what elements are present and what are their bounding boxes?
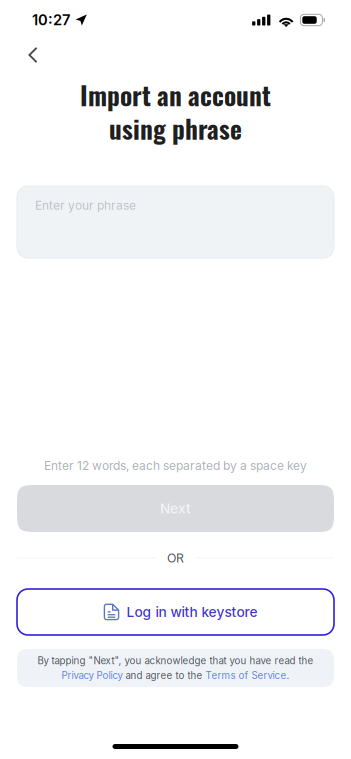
staticText: Terms of Service <box>205 669 286 681</box>
button[interactable]: Log in with keystore <box>17 589 334 635</box>
button[interactable]: Enter your phrase <box>17 186 334 258</box>
staticText: By tapping "Next", you acknowledge that … <box>37 655 313 666</box>
staticText: Import an account <box>80 76 271 113</box>
staticText: OR <box>167 551 184 565</box>
staticText: and agree to the <box>122 669 205 681</box>
staticText: Enter 12 words, each separated by a spac… <box>44 458 307 473</box>
staticText: using phrase <box>109 109 242 147</box>
button[interactable]: Back <box>18 40 48 70</box>
staticText: 10:27 <box>32 11 70 29</box>
staticText: Log in with keystore <box>127 604 258 620</box>
staticText: Enter your phrase <box>35 198 136 213</box>
staticText: . <box>286 669 289 681</box>
button[interactable]: Next <box>17 485 334 532</box>
staticText: Privacy Policy <box>61 669 122 681</box>
staticText: Next <box>160 500 191 517</box>
